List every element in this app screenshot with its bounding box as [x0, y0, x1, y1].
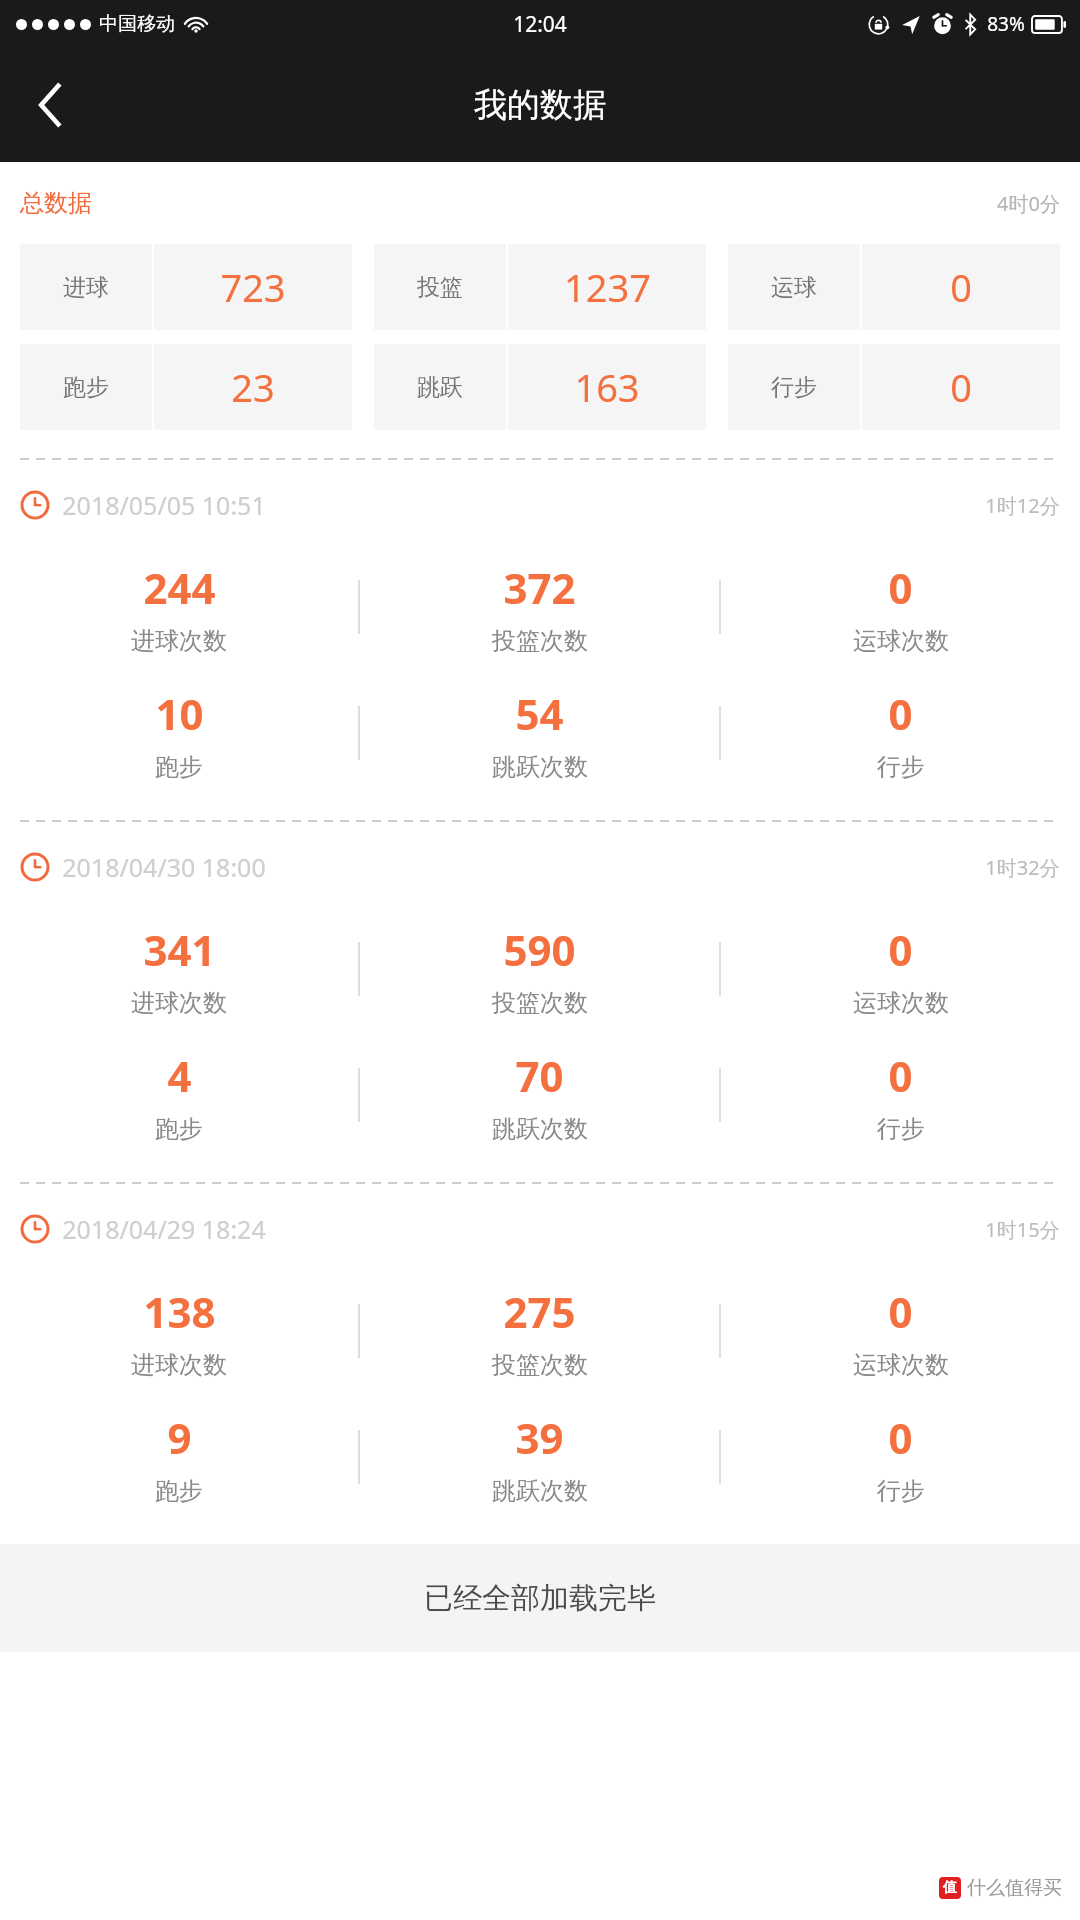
staticText: 723	[220, 261, 286, 313]
staticText: 83%	[987, 11, 1025, 37]
staticText: 什么值得买	[967, 1876, 1062, 1900]
staticText: 2018/04/29 18:24	[62, 1212, 266, 1246]
button[interactable]: 4	[0, 1032, 358, 1158]
staticText: 行步	[771, 373, 817, 402]
button[interactable]: 39	[360, 1394, 719, 1520]
staticText: 运球次数	[853, 1350, 949, 1380]
staticText: 590	[503, 921, 576, 978]
button[interactable]: 275	[360, 1268, 719, 1394]
staticText: 进球次数	[131, 1350, 227, 1380]
button[interactable]: 10	[0, 670, 358, 796]
staticText: 进球	[63, 273, 109, 302]
staticText: 4	[167, 1047, 192, 1104]
button[interactable]: 341	[0, 906, 358, 1032]
button[interactable]: Back	[18, 73, 82, 137]
staticText: 0	[950, 261, 972, 313]
staticText: 163	[574, 361, 640, 413]
button[interactable]: 投篮	[374, 244, 706, 330]
button[interactable]: 跳跃	[374, 344, 706, 430]
button[interactable]: 590	[360, 906, 719, 1032]
button[interactable]: 0	[721, 544, 1080, 670]
staticText: 跑步	[155, 752, 203, 782]
staticText: 总数据	[20, 188, 92, 218]
button[interactable]: 运球	[728, 244, 1060, 330]
button[interactable]: 372	[360, 544, 719, 670]
staticText: 进球次数	[131, 626, 227, 656]
button[interactable]: 0	[721, 1032, 1080, 1158]
staticText: 已经全部加载完毕	[424, 1580, 656, 1617]
staticText: 我的数据	[474, 84, 606, 126]
staticText: 投篮次数	[492, 1350, 588, 1380]
staticText: 0	[888, 1409, 913, 1466]
staticText: 39	[515, 1409, 564, 1466]
button[interactable]: 2018/04/29 18:24	[0, 1184, 1080, 1544]
staticText: 投篮次数	[492, 626, 588, 656]
staticText: 运球	[771, 273, 817, 302]
staticText: 1时32分	[985, 854, 1060, 881]
staticText: 中国移动	[99, 12, 175, 36]
staticText: 0	[888, 559, 913, 616]
button[interactable]: 2018/05/05 10:51	[0, 460, 1080, 820]
staticText: 值	[943, 1879, 957, 1897]
staticText: 投篮	[417, 273, 463, 302]
staticText: 9	[167, 1409, 192, 1466]
button[interactable]: 0	[721, 1394, 1080, 1520]
staticText: 进球次数	[131, 988, 227, 1018]
staticText: 0	[888, 1283, 913, 1340]
staticText: 跳跃	[417, 373, 463, 402]
staticText: 投篮次数	[492, 988, 588, 1018]
staticText: 行步	[877, 752, 925, 782]
button[interactable]: 0	[721, 670, 1080, 796]
staticText: 0	[888, 921, 913, 978]
staticText: 运球次数	[853, 988, 949, 1018]
staticText: 跳跃次数	[492, 1114, 588, 1144]
staticText: 跑步	[63, 373, 109, 402]
button[interactable]: 54	[360, 670, 719, 796]
staticText: 275	[503, 1283, 576, 1340]
staticText: 行步	[877, 1476, 925, 1506]
staticText: 运球次数	[853, 626, 949, 656]
staticText: 2018/05/05 10:51	[62, 488, 266, 522]
staticText: 行步	[877, 1114, 925, 1144]
staticText: 0	[888, 685, 913, 742]
staticText: 跑步	[155, 1476, 203, 1506]
button[interactable]: 244	[0, 544, 358, 670]
staticText: 4时0分	[997, 190, 1060, 217]
staticText: 10	[155, 685, 204, 742]
staticText: 1237	[564, 261, 651, 313]
staticText: 跳跃次数	[492, 1476, 588, 1506]
staticText: 54	[515, 685, 564, 742]
staticText: 2018/04/30 18:00	[62, 850, 266, 884]
staticText: 23	[231, 361, 275, 413]
staticText: 跳跃次数	[492, 752, 588, 782]
button[interactable]: 138	[0, 1268, 358, 1394]
staticText: 0	[950, 361, 972, 413]
staticText: 1时12分	[985, 492, 1060, 519]
button[interactable]: 跑步	[20, 344, 352, 430]
button[interactable]: 行步	[728, 344, 1060, 430]
button[interactable]: 0	[721, 906, 1080, 1032]
button[interactable]: 进球	[20, 244, 352, 330]
staticText: 244	[143, 559, 216, 616]
staticText: 1时15分	[985, 1216, 1060, 1243]
button[interactable]: 2018/04/30 18:00	[0, 822, 1080, 1182]
staticText: 跑步	[155, 1114, 203, 1144]
button[interactable]: 9	[0, 1394, 358, 1520]
staticText: 341	[143, 921, 216, 978]
staticText: 138	[143, 1283, 216, 1340]
button[interactable]: 70	[360, 1032, 719, 1158]
staticText: 12:04	[513, 10, 567, 39]
staticText: 0	[888, 1047, 913, 1104]
staticText: 70	[515, 1047, 564, 1104]
staticText: 372	[503, 559, 576, 616]
button[interactable]: 0	[721, 1268, 1080, 1394]
